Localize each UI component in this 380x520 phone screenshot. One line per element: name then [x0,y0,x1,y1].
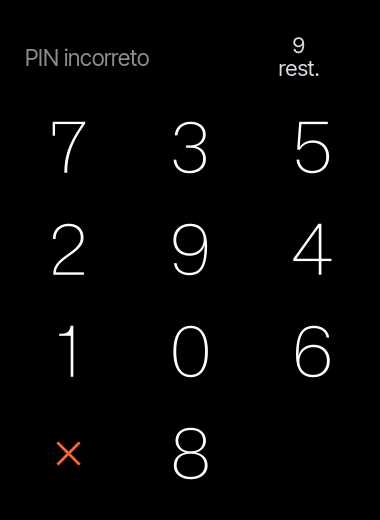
button[interactable]: 5 [251,94,373,196]
button[interactable]: 1 [7,298,129,400]
staticText: 9 [169,198,211,297]
button[interactable]: 3 [129,94,251,196]
staticText: 9 [292,32,305,59]
button[interactable]: 9 [129,196,251,298]
staticText: 6 [291,300,333,399]
staticText: 4 [291,198,334,297]
button[interactable]: 6 [251,298,373,400]
staticText: 5 [292,96,333,195]
staticText: 7 [49,96,87,195]
button[interactable]: Delete [7,400,129,502]
staticText: 0 [169,300,212,399]
staticText: rest. [278,55,319,81]
button[interactable]: 8 [129,400,251,502]
staticText: 8 [170,402,211,501]
button[interactable]: 4 [251,196,373,298]
button[interactable]: 7 [7,94,129,196]
button[interactable]: 0 [129,298,251,400]
staticText: 1 [57,300,80,399]
staticText: 2 [49,198,87,297]
button[interactable]: 2 [7,196,129,298]
staticText: PIN incorreto [25,44,149,71]
staticText: 3 [170,96,210,195]
